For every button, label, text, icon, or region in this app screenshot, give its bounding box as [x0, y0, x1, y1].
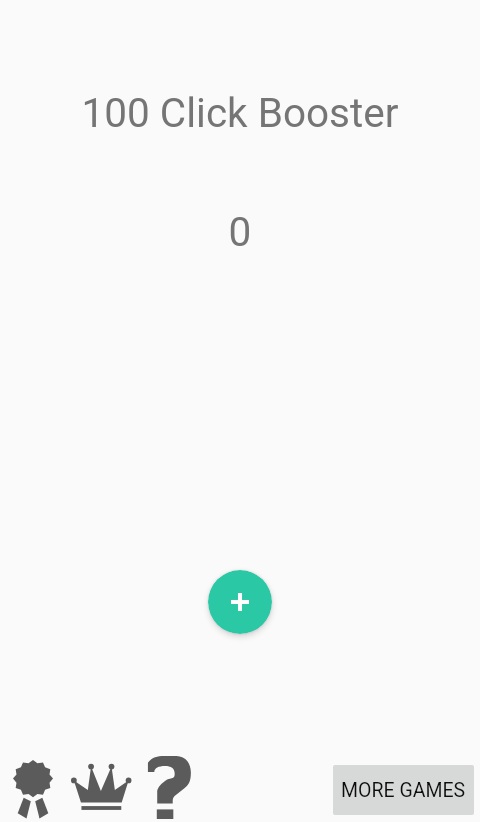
button[interactable]: Help [140, 748, 202, 822]
button[interactable]: Add one click [208, 570, 272, 634]
button[interactable]: MORE GAMES [333, 765, 474, 815]
staticText: 100 Click Booster [0, 89, 480, 136]
staticText: 0 [0, 208, 480, 255]
button[interactable]: Achievements [4, 752, 62, 822]
staticText: MORE GAMES [341, 779, 466, 802]
button[interactable]: Leaderboard [63, 752, 135, 822]
